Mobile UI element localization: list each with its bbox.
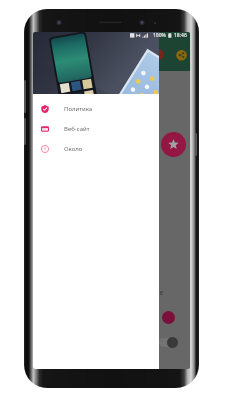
staticText: Политика bbox=[64, 105, 93, 113]
button[interactable]: Около bbox=[33, 139, 159, 159]
button[interactable]: Политика bbox=[33, 99, 159, 119]
staticText: Около bbox=[64, 145, 83, 153]
staticText: 18:46 bbox=[174, 32, 187, 39]
staticText: 100% bbox=[153, 32, 166, 39]
staticText: ное bbox=[151, 288, 164, 298]
button[interactable]: Веб-сайт bbox=[33, 119, 159, 139]
button[interactable]: Favorite bbox=[161, 132, 186, 157]
staticText: Веб-сайт bbox=[64, 125, 90, 133]
